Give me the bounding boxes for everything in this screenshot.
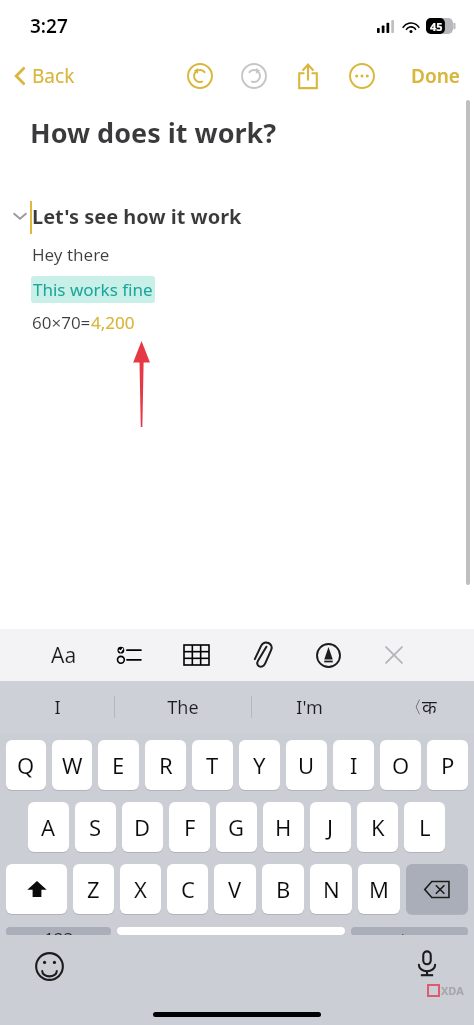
button[interactable]: J — [310, 802, 351, 852]
button[interactable]: Backspace — [406, 864, 468, 914]
staticText: V — [228, 874, 242, 904]
staticText: Done — [411, 63, 460, 89]
button[interactable]: K — [357, 802, 398, 852]
button[interactable]: Share — [291, 59, 325, 93]
staticText: XDA — [441, 983, 464, 998]
button[interactable]: The — [115, 681, 251, 733]
staticText: J — [327, 812, 334, 842]
staticText: I'm — [296, 695, 323, 720]
staticText: क — [422, 694, 437, 720]
staticText: G — [228, 812, 245, 842]
button[interactable]: I — [0, 681, 114, 733]
button[interactable]: Attach file — [244, 637, 280, 673]
button[interactable]: Space — [117, 927, 345, 935]
button[interactable]: F — [169, 802, 210, 852]
button[interactable]: Close keyboard — [374, 635, 414, 675]
button[interactable]: T — [192, 740, 233, 790]
button[interactable]: D — [122, 802, 163, 852]
staticText: F — [184, 812, 196, 842]
staticText: D — [134, 812, 151, 842]
button[interactable]: W — [52, 740, 92, 790]
button[interactable]: B — [262, 864, 304, 914]
button[interactable]: Checklist — [112, 637, 148, 673]
button[interactable]: Insert table — [178, 637, 214, 673]
button[interactable]: Back — [0, 57, 85, 95]
button[interactable]: Dictation — [406, 943, 448, 985]
staticText: M — [369, 874, 389, 904]
staticText: K — [371, 812, 385, 842]
staticText: W — [62, 750, 83, 780]
staticText: I — [350, 750, 358, 780]
staticText: 3:27 — [30, 13, 68, 39]
staticText: How does it work? — [30, 114, 277, 151]
button[interactable]: U — [286, 740, 327, 790]
staticText: H — [275, 812, 292, 842]
staticText: 〈 — [405, 697, 422, 718]
staticText: R — [159, 750, 173, 780]
button[interactable]: return — [351, 927, 468, 935]
staticText: 123 — [44, 927, 74, 935]
button[interactable]: N — [310, 864, 352, 914]
staticText: L — [419, 812, 431, 842]
staticText: 60×70= — [32, 311, 91, 334]
button[interactable]: 〈 — [367, 681, 474, 733]
button[interactable]: Redo — [237, 59, 271, 93]
staticText: E — [112, 750, 125, 780]
staticText: U — [298, 750, 315, 780]
button[interactable]: V — [214, 864, 256, 914]
staticText: X — [134, 874, 147, 904]
staticText: Let's see how it work — [32, 203, 242, 230]
staticText: Z — [87, 874, 100, 904]
staticText: C — [181, 874, 195, 904]
staticText: I — [54, 695, 61, 720]
staticText: This works fine — [33, 278, 153, 301]
staticText: Q — [17, 750, 35, 780]
button[interactable]: L — [404, 802, 445, 852]
staticText: A — [41, 812, 56, 842]
staticText: 4,200 — [91, 311, 135, 334]
button[interactable]: R — [145, 740, 186, 790]
button[interactable]: More options — [345, 59, 379, 93]
button[interactable]: Emoji — [28, 945, 70, 987]
staticText: P — [441, 750, 455, 780]
staticText: Aa — [51, 641, 77, 670]
staticText: Back — [32, 63, 75, 89]
staticText: 45 — [430, 19, 443, 34]
button[interactable]: A — [28, 802, 69, 852]
button[interactable]: Shift — [6, 864, 67, 914]
button[interactable]: 123 — [6, 927, 111, 935]
button[interactable]: Q — [6, 740, 46, 790]
staticText: return — [384, 927, 435, 935]
staticText: T — [206, 750, 219, 780]
button[interactable]: Done — [397, 57, 474, 95]
staticText: O — [392, 750, 410, 780]
button[interactable]: Undo — [183, 59, 217, 93]
button[interactable]: O — [380, 740, 421, 790]
button[interactable]: I — [333, 740, 374, 790]
button[interactable]: C — [167, 864, 208, 914]
button[interactable]: X — [120, 864, 161, 914]
button[interactable]: P — [427, 740, 468, 790]
button[interactable]: Z — [73, 864, 114, 914]
button[interactable]: Markup — [310, 637, 346, 673]
button[interactable]: I'm — [252, 681, 367, 733]
staticText: B — [276, 874, 291, 904]
staticText: Y — [253, 750, 266, 780]
staticText: Hey there — [32, 243, 110, 266]
button[interactable]: Format text — [46, 637, 82, 673]
staticText: S — [89, 812, 102, 842]
staticText: N — [323, 874, 340, 904]
button[interactable]: G — [216, 802, 257, 852]
button[interactable]: S — [75, 802, 116, 852]
staticText: The — [167, 695, 199, 720]
button[interactable]: E — [98, 740, 139, 790]
button[interactable]: M — [358, 864, 400, 914]
button[interactable]: H — [263, 802, 304, 852]
button[interactable]: Y — [239, 740, 280, 790]
